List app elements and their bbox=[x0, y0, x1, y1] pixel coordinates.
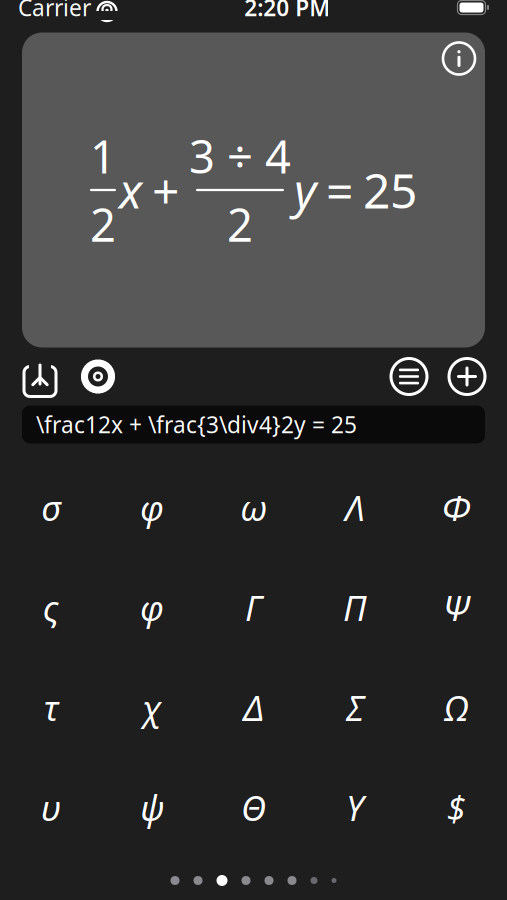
staticText: τ bbox=[44, 684, 58, 730]
staticText: Δ bbox=[243, 684, 263, 730]
staticText: ω bbox=[240, 484, 267, 530]
staticText: σ bbox=[41, 484, 60, 530]
button[interactable]: Ψ bbox=[406, 557, 507, 657]
button[interactable]: Γ bbox=[203, 557, 304, 657]
staticText: Σ bbox=[346, 684, 364, 730]
button[interactable]: Δ bbox=[203, 657, 304, 757]
button[interactable]: Λ bbox=[304, 457, 406, 557]
staticText: \frac12x + \frac{3\div4}2y = 25 bbox=[36, 409, 357, 439]
staticText: y bbox=[294, 158, 316, 222]
staticText: Φ bbox=[442, 484, 471, 530]
button[interactable]: List bbox=[387, 354, 431, 398]
button[interactable]: τ bbox=[0, 657, 101, 757]
button[interactable]: χ bbox=[101, 657, 203, 757]
staticText: 2 bbox=[227, 194, 253, 254]
staticText: 2:20 PM bbox=[244, 0, 330, 22]
button[interactable]: σ bbox=[0, 457, 101, 557]
button[interactable]: Σ bbox=[304, 657, 406, 757]
button[interactable]: φ bbox=[101, 557, 203, 657]
staticText: Θ bbox=[241, 784, 266, 830]
staticText: Π bbox=[343, 584, 367, 630]
button[interactable]: Θ bbox=[203, 757, 304, 857]
button[interactable]: ω bbox=[203, 457, 304, 557]
staticText: Carrier bbox=[18, 0, 91, 22]
staticText: 2 bbox=[90, 194, 116, 254]
button[interactable]: Ω bbox=[406, 657, 507, 757]
button[interactable]: Π bbox=[304, 557, 406, 657]
staticText: Υ bbox=[346, 784, 364, 830]
staticText: φ bbox=[140, 584, 164, 630]
button[interactable]: Settings bbox=[76, 354, 120, 398]
button[interactable]: ς bbox=[0, 557, 101, 657]
button[interactable]: ψ bbox=[101, 757, 203, 857]
staticText: Ψ bbox=[442, 584, 470, 630]
staticText: υ bbox=[41, 784, 61, 830]
button[interactable]: φ bbox=[101, 457, 203, 557]
button[interactable]: $ bbox=[406, 757, 507, 857]
button[interactable]: Info bbox=[437, 36, 481, 80]
staticText: ψ bbox=[140, 784, 164, 830]
staticText: = bbox=[326, 158, 353, 222]
staticText: φ bbox=[140, 484, 164, 530]
button[interactable]: Add bbox=[445, 354, 489, 398]
button[interactable]: υ bbox=[0, 757, 101, 857]
staticText: $ bbox=[447, 784, 466, 830]
staticText: 1 bbox=[90, 126, 116, 186]
staticText: 3 ÷ 4 bbox=[189, 126, 291, 186]
button[interactable]: \frac12x + \frac{3\div4}2y = 25 bbox=[22, 405, 485, 443]
staticText: χ bbox=[142, 684, 162, 730]
button[interactable]: Φ bbox=[406, 457, 507, 557]
button[interactable]: Υ bbox=[304, 757, 406, 857]
staticText: Ω bbox=[445, 684, 468, 730]
staticText: Λ bbox=[345, 484, 365, 530]
staticText: x bbox=[119, 158, 142, 222]
staticText: + bbox=[152, 158, 179, 222]
staticText: 25 bbox=[363, 158, 417, 222]
button[interactable]: Save bbox=[18, 354, 62, 398]
staticText: ς bbox=[43, 584, 59, 630]
staticText: Γ bbox=[245, 584, 262, 630]
